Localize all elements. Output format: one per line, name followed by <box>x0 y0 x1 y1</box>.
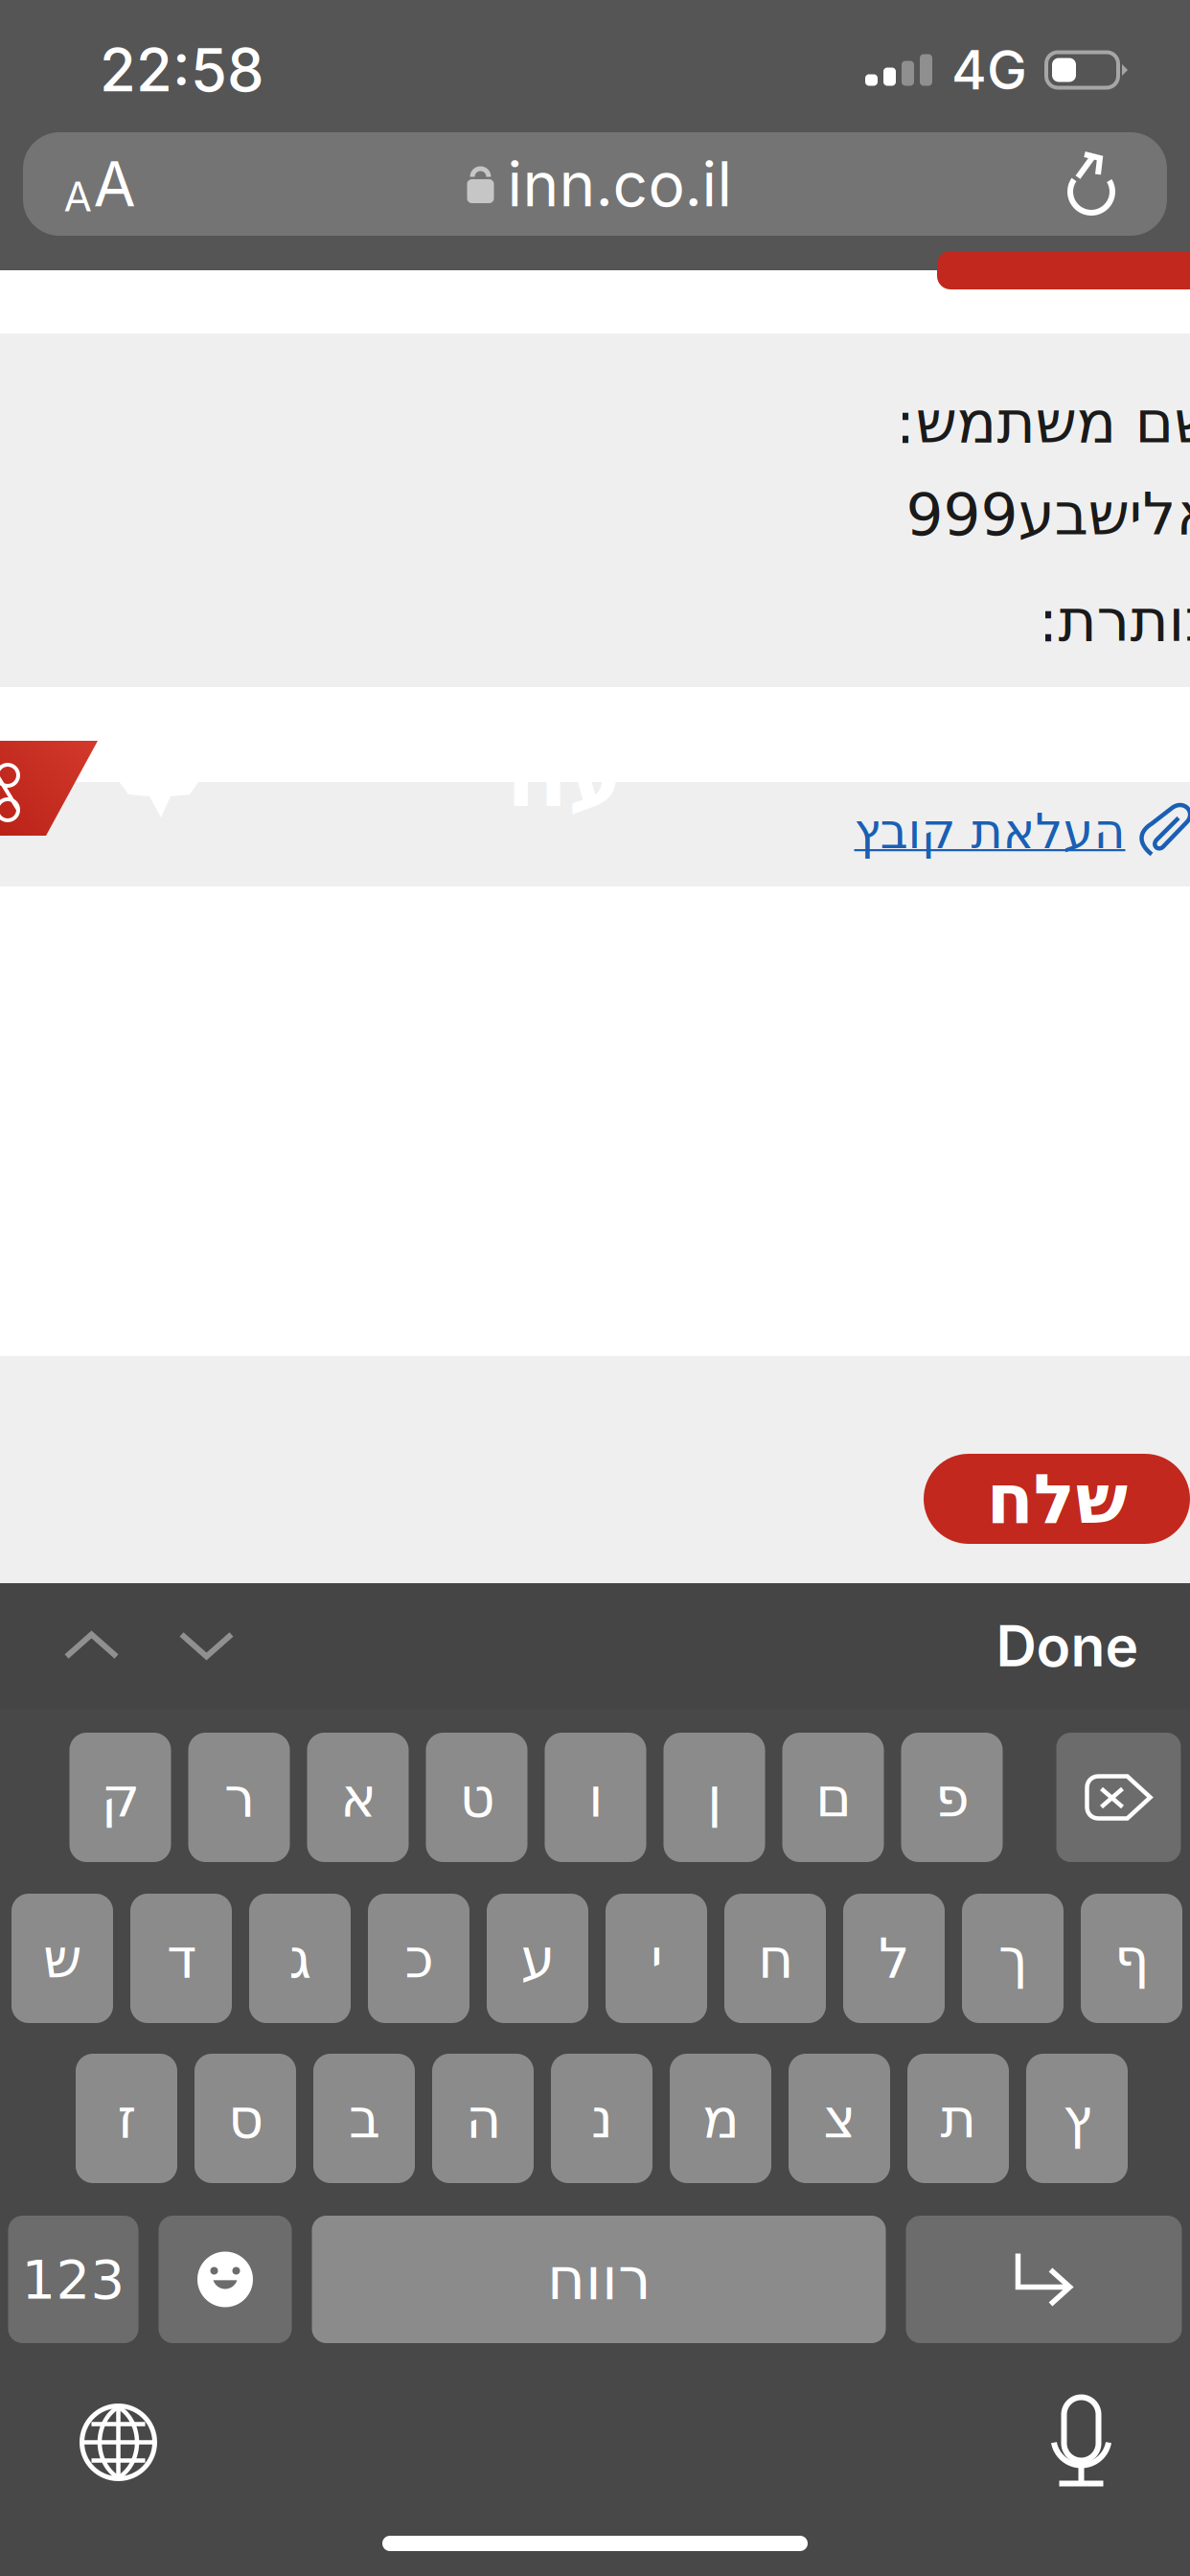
staticText: שלח <box>986 1459 1128 1539</box>
button[interactable]: ס <box>195 2054 296 2183</box>
staticText: פ <box>935 1765 969 1829</box>
staticText: 22:58 <box>100 34 264 106</box>
button[interactable]: שלח <box>924 1454 1190 1544</box>
staticText: ח <box>757 1926 793 1990</box>
button[interactable]: ש <box>11 1894 113 2023</box>
button[interactable]: י <box>606 1894 707 2023</box>
button[interactable]: ל <box>843 1894 945 2023</box>
button[interactable]: פ <box>901 1733 1003 1862</box>
staticText: רווח <box>547 2245 651 2314</box>
staticText: מ <box>702 2086 739 2150</box>
staticText: צ <box>823 2086 856 2150</box>
staticText: ך <box>998 1926 1028 1990</box>
staticText: A <box>64 172 92 221</box>
staticText: ש <box>43 1926 82 1990</box>
staticText: ן <box>707 1765 722 1829</box>
staticText: אלישבע999 <box>905 480 1190 549</box>
button[interactable]: Reload page <box>1023 132 1167 236</box>
staticText: 4G <box>951 37 1027 102</box>
button[interactable]: Return <box>906 2216 1182 2343</box>
button[interactable]: Done <box>996 1583 1139 1709</box>
button[interactable]: ם <box>782 1733 884 1862</box>
button[interactable]: כ <box>368 1894 469 2023</box>
button[interactable]: Delete <box>1056 1733 1181 1862</box>
staticText: ק <box>101 1765 140 1829</box>
staticText: א <box>340 1765 376 1829</box>
staticText: Done <box>996 1612 1139 1680</box>
staticText: ע <box>520 1926 555 1990</box>
staticText: ב <box>348 2086 380 2150</box>
button[interactable]: ו <box>545 1733 646 1862</box>
staticText: ו <box>588 1765 603 1829</box>
staticText: ץ <box>1062 2086 1092 2150</box>
button[interactable]: רווח <box>312 2216 886 2343</box>
button[interactable]: א <box>307 1733 409 1862</box>
button[interactable]: Page settings <box>23 132 176 236</box>
button[interactable]: ק <box>69 1733 171 1862</box>
button[interactable]: ך <box>962 1894 1064 2023</box>
button[interactable]: ע <box>487 1894 588 2023</box>
staticText: ף <box>1114 1926 1149 1990</box>
staticText: 123 <box>22 2248 125 2311</box>
staticText: ג <box>288 1926 311 1990</box>
button[interactable]: 123 <box>8 2216 138 2343</box>
button[interactable]: Next field <box>149 1583 264 1709</box>
staticText: ז <box>117 2086 136 2150</box>
button[interactable]: נ <box>551 2054 652 2183</box>
button[interactable]: ר <box>188 1733 290 1862</box>
button[interactable]: ת <box>907 2054 1009 2183</box>
staticText: שם משתמש: <box>895 388 1190 457</box>
button[interactable]: ד <box>130 1894 232 2023</box>
button[interactable]: ח <box>724 1894 826 2023</box>
staticText: ד <box>166 1926 196 1990</box>
staticText: ה <box>465 2086 501 2150</box>
button[interactable]: Previous field <box>34 1583 149 1709</box>
button[interactable]: העלאת קובץ <box>854 803 1190 860</box>
staticText: י <box>650 1926 663 1990</box>
button[interactable]: צ <box>789 2054 890 2183</box>
staticText: כותרת: <box>1038 587 1190 655</box>
button[interactable]: ה <box>432 2054 534 2183</box>
button[interactable]: ב <box>313 2054 415 2183</box>
staticText: ם <box>815 1765 851 1829</box>
staticText: ר <box>224 1765 254 1829</box>
staticText: A <box>93 147 136 221</box>
button[interactable]: Next keyboard <box>61 2390 176 2495</box>
staticText: inn.co.il <box>507 147 732 221</box>
button[interactable]: Emoji keyboard <box>159 2216 292 2343</box>
button[interactable]: ט <box>426 1733 527 1862</box>
button[interactable]: מ <box>670 2054 771 2183</box>
button[interactable]: Dictation <box>1024 2390 1139 2495</box>
staticText: ס <box>228 2086 263 2150</box>
button[interactable]: ן <box>664 1733 765 1862</box>
button[interactable]: ף <box>1081 1894 1182 2023</box>
staticText: העלאת קובץ <box>854 803 1125 860</box>
staticText: ט <box>459 1765 494 1829</box>
staticText: נ <box>591 2086 613 2150</box>
button[interactable]: ץ <box>1026 2054 1128 2183</box>
staticText: ל <box>878 1926 910 1990</box>
button[interactable]: ג <box>249 1894 351 2023</box>
button[interactable]: ז <box>76 2054 177 2183</box>
staticText: כ <box>404 1926 433 1990</box>
staticText: ת <box>940 2086 976 2150</box>
staticText: עוד <box>489 727 624 826</box>
